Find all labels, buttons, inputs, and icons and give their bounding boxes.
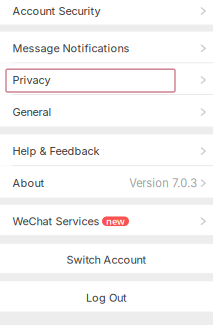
- staticText: Message Notifications: [12, 42, 129, 55]
- button[interactable]: Account Security: [0, 0, 213, 25]
- staticText: Version 7.0.3: [129, 176, 197, 190]
- staticText: About: [12, 176, 44, 190]
- button[interactable]: Help & Feedback: [0, 134, 213, 165]
- button[interactable]: Privacy: [0, 63, 213, 94]
- staticText: Log Out: [86, 291, 127, 304]
- button[interactable]: Switch Account: [0, 244, 213, 273]
- staticText: Privacy: [12, 73, 50, 87]
- staticText: General: [12, 105, 51, 119]
- staticText: Switch Account: [66, 253, 146, 266]
- staticText: new: [106, 215, 125, 227]
- staticText: WeChat Services: [12, 215, 99, 228]
- button[interactable]: General: [0, 95, 213, 127]
- button[interactable]: About: [0, 166, 213, 198]
- staticText: Help & Feedback: [12, 144, 99, 158]
- button[interactable]: Log Out: [0, 281, 213, 312]
- button[interactable]: WeChat Services: [0, 205, 213, 235]
- staticText: Account Security: [12, 4, 100, 17]
- button[interactable]: Message Notifications: [0, 32, 213, 63]
